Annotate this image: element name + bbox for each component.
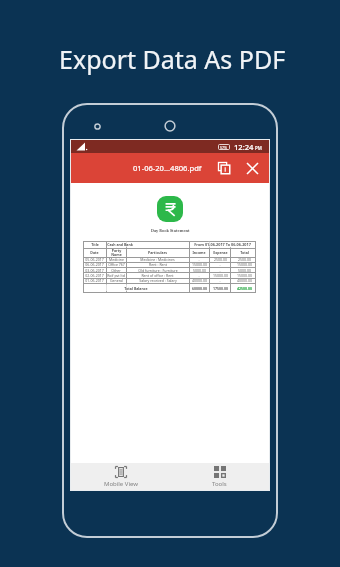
staticText: 5000.00 bbox=[193, 268, 206, 273]
staticText: PM bbox=[255, 145, 262, 151]
staticText: 40000.00 bbox=[237, 278, 252, 283]
staticText: Total Balance bbox=[124, 286, 148, 291]
staticText: 01-06-20...4806.pdf bbox=[133, 163, 202, 173]
staticText: Party Name bbox=[111, 248, 122, 257]
staticText: Cash and Bank bbox=[107, 242, 133, 247]
staticText: - bbox=[198, 273, 200, 278]
staticText: Income bbox=[192, 250, 206, 255]
staticText: Other bbox=[111, 268, 121, 273]
staticText: 06-06-2017 bbox=[85, 262, 104, 267]
staticText: 42500.00 bbox=[237, 286, 252, 291]
staticText: 15000.00 bbox=[237, 273, 252, 278]
staticText: 05-06-2017 bbox=[85, 257, 104, 262]
staticText: Title bbox=[91, 242, 99, 247]
staticText: Day Book Statement bbox=[151, 228, 190, 233]
staticText: Tools bbox=[212, 480, 227, 488]
staticText: Medicine : Medicines bbox=[140, 257, 175, 262]
button[interactable]: Close bbox=[242, 158, 262, 178]
button[interactable]: Mobile View bbox=[71, 463, 170, 490]
staticText: - bbox=[198, 257, 200, 262]
staticText: General bbox=[110, 278, 123, 283]
staticText: Particulars bbox=[148, 250, 167, 255]
staticText: Salary received : Salary bbox=[139, 278, 177, 283]
staticText: Rent of office : Rent bbox=[141, 273, 174, 278]
staticText: 57% bbox=[220, 145, 228, 150]
staticText: Rent : Rent bbox=[149, 262, 167, 267]
staticText: - bbox=[219, 278, 221, 283]
staticText: Date bbox=[90, 250, 99, 255]
staticText: Roif pvt ltd bbox=[107, 273, 125, 278]
staticText: From 01-06-2017 To 06-06-2017 bbox=[194, 242, 251, 247]
staticText: Old furniture : Furniture bbox=[138, 268, 178, 273]
staticText: 12:24 bbox=[234, 142, 254, 152]
staticText: 60000.00 bbox=[192, 286, 207, 291]
staticText: Medicine bbox=[109, 257, 124, 262]
staticText: Office 767 bbox=[108, 262, 125, 267]
staticText: 03-06-2017 bbox=[85, 268, 104, 273]
staticText: - bbox=[219, 262, 221, 267]
staticText: Expense bbox=[213, 250, 228, 255]
staticText: 40000.00 bbox=[192, 278, 207, 283]
staticText: Mobile View bbox=[104, 480, 138, 488]
button[interactable]: Tools bbox=[170, 463, 269, 490]
staticText: 15000.00 bbox=[237, 262, 252, 267]
staticText: 01-06-2017 bbox=[85, 278, 104, 283]
staticText: Export Data As PDF bbox=[59, 42, 286, 76]
staticText: 2500.00 bbox=[214, 257, 227, 262]
staticText: 2500.00 bbox=[238, 257, 251, 262]
staticText: 15000.00 bbox=[213, 273, 228, 278]
staticText: 17500.00 bbox=[213, 286, 228, 291]
button[interactable]: Page count bbox=[214, 158, 234, 178]
staticText: 5000.00 bbox=[238, 268, 251, 273]
staticText: 02-06-2017 bbox=[85, 273, 104, 278]
staticText: Total bbox=[240, 250, 249, 255]
staticText: - bbox=[219, 268, 221, 273]
staticText: 15000.00 bbox=[192, 262, 207, 267]
